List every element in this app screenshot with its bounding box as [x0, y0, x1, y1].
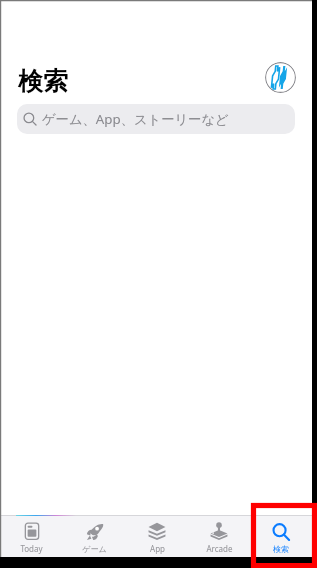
button[interactable]: ゲーム	[63, 516, 126, 557]
staticText: ゲーム、App、ストーリーなど	[42, 110, 229, 128]
staticText: App	[150, 543, 165, 554]
staticText: Arcade	[206, 543, 233, 554]
button[interactable]: Today	[0, 516, 63, 557]
button[interactable]: Arcade	[188, 516, 250, 557]
button[interactable]: App	[126, 516, 188, 557]
staticText: Today	[20, 543, 43, 554]
staticText: ゲーム	[82, 544, 107, 554]
button[interactable]: 検索	[250, 516, 312, 557]
button[interactable]: ゲーム、App、ストーリーなど	[17, 104, 295, 134]
button[interactable]: Account	[265, 62, 296, 93]
staticText: 検索	[273, 544, 289, 554]
staticText: 検索	[18, 66, 68, 97]
